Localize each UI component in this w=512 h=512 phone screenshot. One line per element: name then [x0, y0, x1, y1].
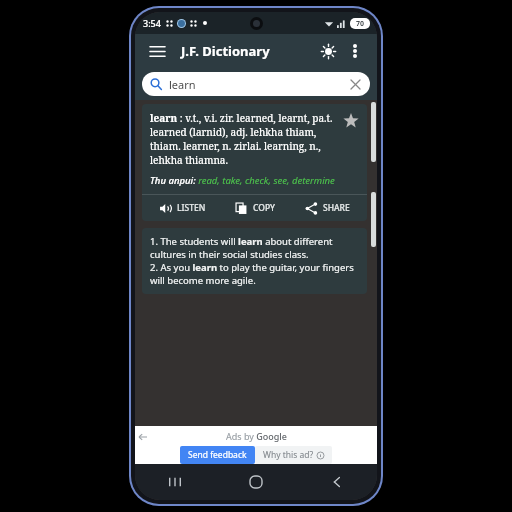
staticText: 1. The students will learn about differe… [150, 235, 359, 287]
staticText: J.F. Dictionary [181, 42, 270, 60]
button[interactable]: Send feedback [180, 446, 255, 464]
button[interactable]: Brightness [315, 38, 341, 64]
button[interactable]: More options [343, 39, 367, 63]
button[interactable]: LISTEN [146, 195, 219, 221]
staticText: Send feedback [188, 449, 247, 461]
button[interactable]: Clear [348, 77, 362, 91]
staticText: Thu anpui: read, take, check, see, deter… [150, 174, 335, 187]
button[interactable]: COPY [219, 195, 291, 221]
staticText: learn [169, 77, 196, 92]
button[interactable]: Recents [135, 464, 215, 500]
staticText: 3:54 [143, 17, 161, 29]
button[interactable]: Why this ad? [255, 446, 332, 464]
staticText: Why this ad? [263, 449, 314, 461]
button[interactable]: Menu [145, 39, 169, 63]
staticText: COPY [253, 202, 276, 214]
staticText: Ads by Google [226, 430, 287, 442]
button[interactable]: Back [296, 464, 377, 500]
button[interactable]: learn [142, 72, 370, 96]
staticText: 70 [356, 19, 365, 29]
button[interactable]: Favorite [341, 111, 361, 131]
staticText: learn : v.t., v.i. zir. learned, learnt,… [150, 111, 337, 167]
staticText: LISTEN [177, 202, 206, 214]
staticText: SHARE [323, 202, 350, 214]
button[interactable]: Home [215, 464, 296, 500]
button[interactable]: 1. The students will learn about differe… [142, 228, 367, 294]
button[interactable]: SHARE [291, 195, 363, 221]
